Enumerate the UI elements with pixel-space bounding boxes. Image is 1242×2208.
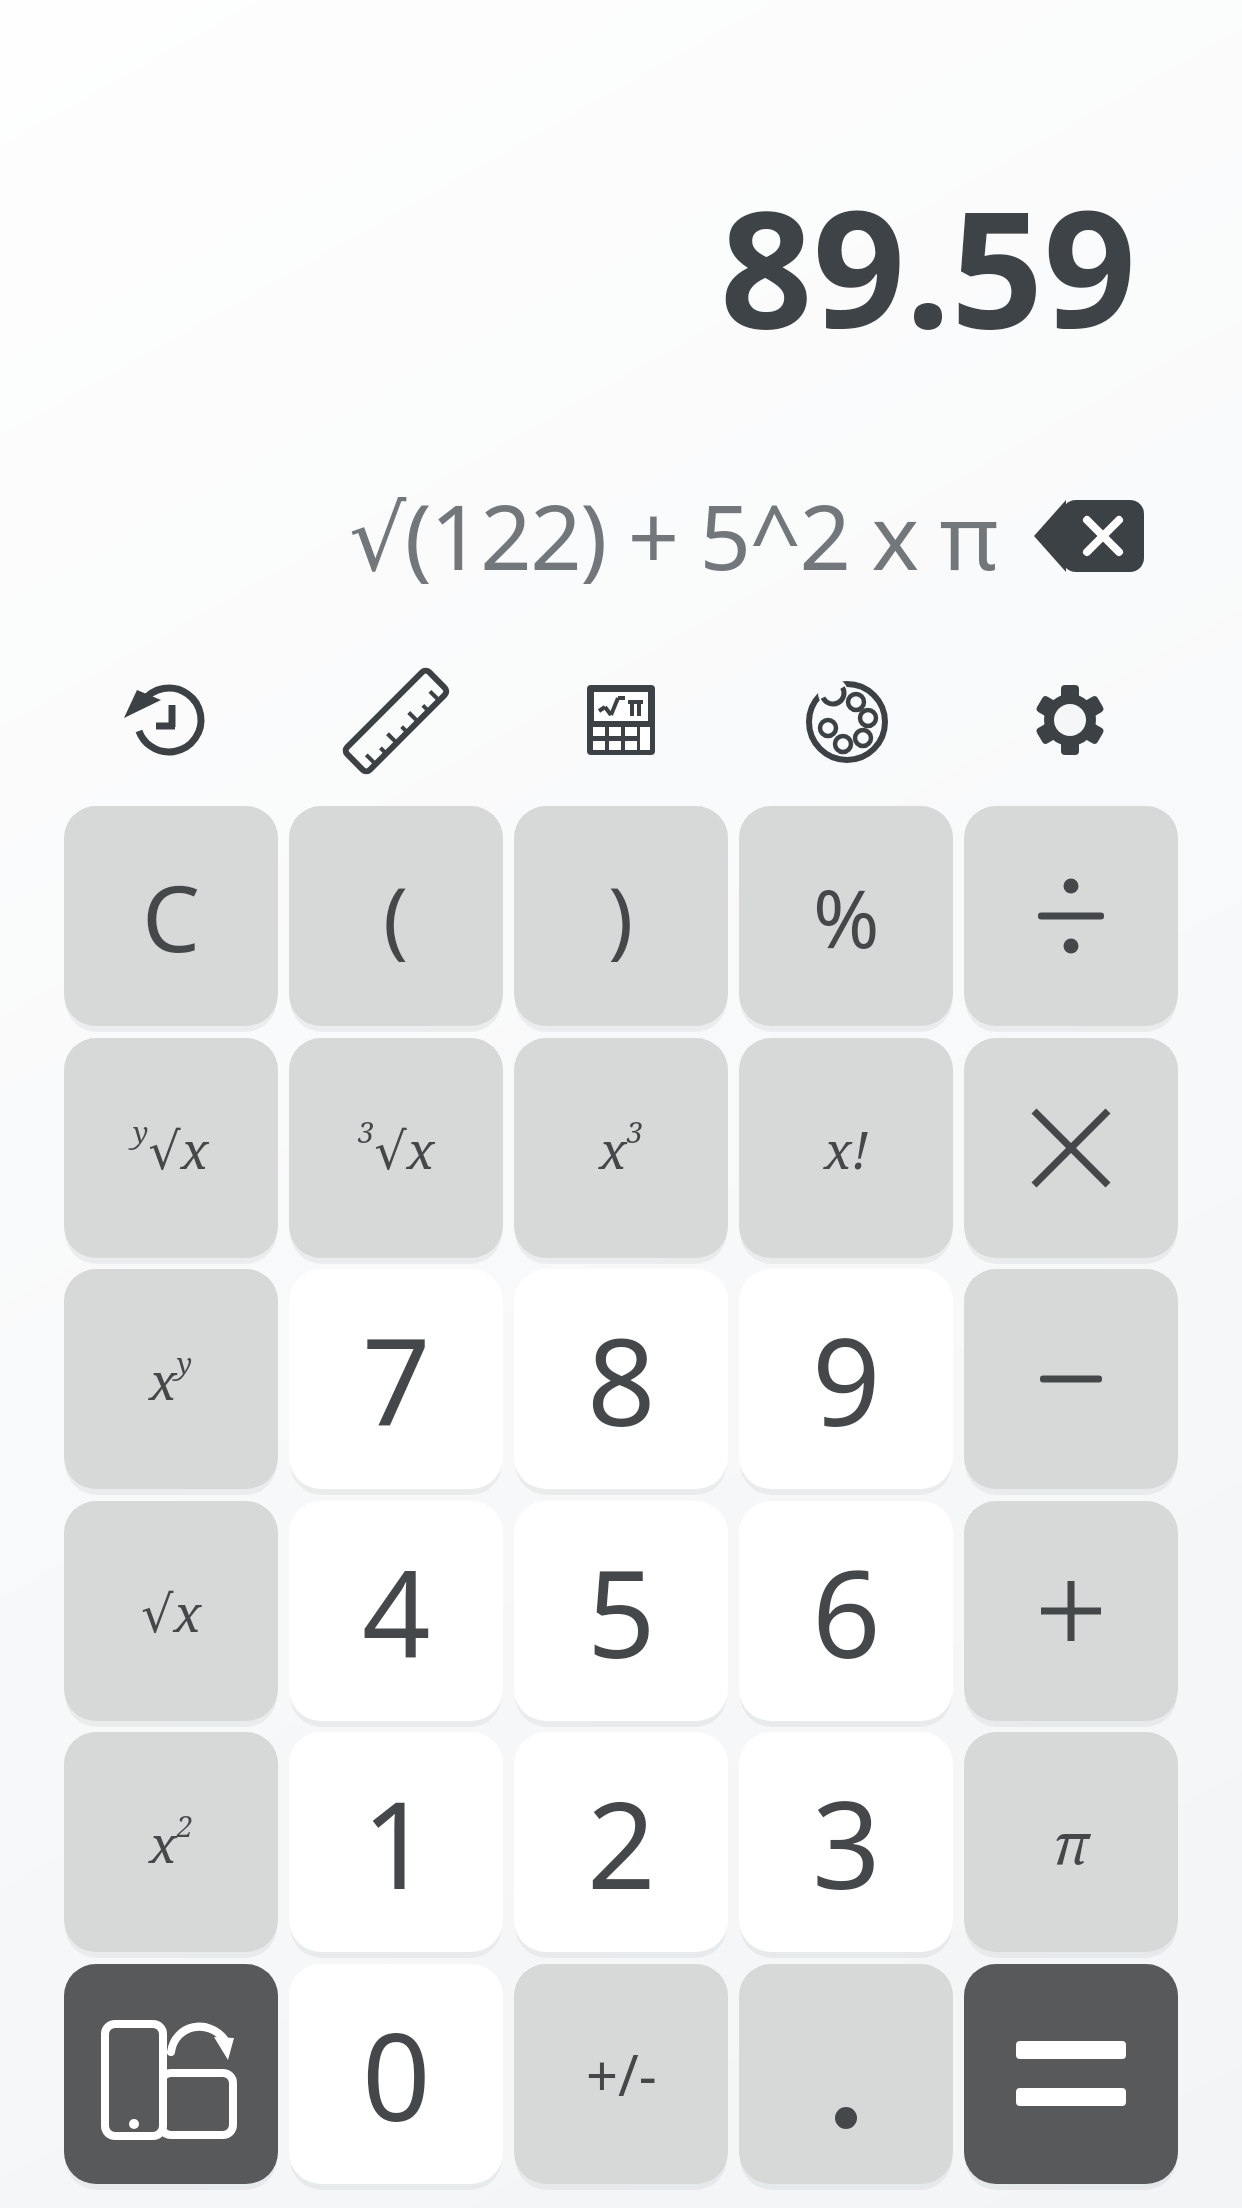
button[interactable]: 3 — [739, 1732, 953, 1952]
button[interactable] — [577, 676, 665, 764]
staticText: 1 — [362, 1761, 431, 1924]
staticText: ) — [608, 859, 634, 973]
button[interactable]: 4 — [289, 1501, 503, 1721]
staticText: 4 — [362, 1530, 431, 1693]
button[interactable]: x2 — [64, 1732, 278, 1952]
staticText: 8 — [587, 1298, 656, 1461]
staticText: % — [813, 862, 880, 971]
button[interactable]: ( — [289, 806, 503, 1026]
button[interactable] — [739, 1964, 953, 2184]
staticText: ( — [383, 859, 409, 973]
button[interactable] — [964, 1501, 1178, 1721]
staticText: 2 — [587, 1761, 656, 1924]
button[interactable]: C — [64, 806, 278, 1026]
button[interactable]: xy — [64, 1269, 278, 1489]
button[interactable]: x3 — [514, 1038, 728, 1258]
button[interactable] — [964, 1964, 1178, 2184]
button[interactable]: 3√x — [289, 1038, 503, 1258]
button[interactable]: 9 — [739, 1269, 953, 1489]
button[interactable] — [964, 1269, 1178, 1489]
staticText: C — [142, 854, 201, 979]
button[interactable]: 2 — [514, 1732, 728, 1952]
staticText: 3√x — [358, 1112, 435, 1184]
button[interactable]: % — [739, 806, 953, 1026]
staticText: 7 — [362, 1298, 431, 1461]
button[interactable]: 7 — [289, 1269, 503, 1489]
button[interactable]: √x — [64, 1501, 278, 1721]
staticText: π — [1053, 1804, 1090, 1880]
staticText: +/- — [586, 2036, 657, 2112]
button[interactable] — [125, 676, 213, 764]
staticText: 9 — [812, 1298, 881, 1461]
button[interactable]: 6 — [739, 1501, 953, 1721]
button[interactable]: 8 — [514, 1269, 728, 1489]
button[interactable]: x! — [739, 1038, 953, 1258]
staticText: 3 — [812, 1761, 881, 1924]
staticText: 0 — [362, 1993, 431, 2156]
staticText: x3 — [599, 1112, 644, 1184]
button[interactable]: 5 — [514, 1501, 728, 1721]
button[interactable]: ) — [514, 806, 728, 1026]
button[interactable]: +/- — [514, 1964, 728, 2184]
button[interactable]: π — [964, 1732, 1178, 1952]
button[interactable] — [964, 1038, 1178, 1258]
button[interactable] — [1032, 492, 1144, 580]
staticText: 5 — [587, 1530, 656, 1693]
button[interactable] — [64, 1964, 278, 2184]
staticText: xy — [149, 1343, 193, 1415]
button[interactable] — [803, 678, 891, 766]
staticText: √x — [141, 1577, 202, 1646]
button[interactable] — [1026, 676, 1114, 764]
button[interactable] — [352, 677, 440, 765]
staticText: √(122) + 5^2 x π — [349, 474, 997, 597]
staticText: x2 — [149, 1806, 194, 1878]
staticText: 6 — [812, 1530, 881, 1693]
staticText: y√x — [133, 1112, 209, 1184]
button[interactable]: 0 — [289, 1964, 503, 2184]
staticText: x! — [824, 1114, 869, 1183]
button[interactable]: y√x — [64, 1038, 278, 1258]
button[interactable]: 1 — [289, 1732, 503, 1952]
button[interactable] — [964, 806, 1178, 1026]
staticText: 89.59 — [720, 155, 1137, 376]
